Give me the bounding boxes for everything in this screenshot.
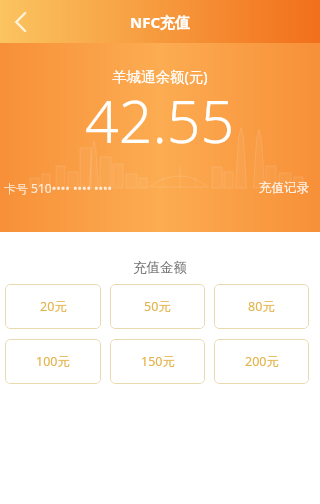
- button[interactable]: 100元: [5, 339, 101, 384]
- staticText: 20元: [40, 298, 67, 315]
- button[interactable]: 20元: [5, 284, 101, 329]
- button[interactable]: 200元: [214, 339, 309, 384]
- staticText: 42.55: [85, 80, 235, 160]
- staticText: 50元: [144, 298, 171, 315]
- staticText: 羊城通余额(元): [112, 66, 208, 86]
- button[interactable]: 80元: [214, 284, 309, 329]
- staticText: 充值记录: [259, 180, 309, 196]
- staticText: 充值金额: [133, 259, 187, 276]
- button[interactable]: 150元: [110, 339, 205, 384]
- staticText: 150元: [141, 353, 175, 370]
- staticText: 200元: [245, 353, 279, 370]
- button[interactable]: 充值记录: [257, 178, 311, 198]
- button[interactable]: Back: [0, 0, 40, 43]
- staticText: NFC充值: [130, 12, 191, 32]
- staticText: 80元: [248, 298, 275, 315]
- staticText: 100元: [36, 353, 70, 370]
- staticText: 卡号 510•••• •••• ••••: [4, 180, 113, 196]
- button[interactable]: 50元: [110, 284, 205, 329]
